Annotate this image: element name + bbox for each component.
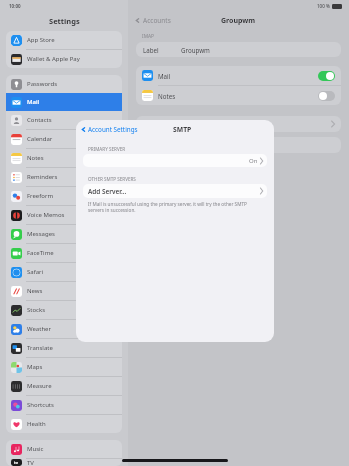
button[interactable]: Maps: [6, 358, 122, 376]
button[interactable]: Health: [6, 415, 122, 433]
button[interactable]: Contacts: [6, 111, 122, 129]
staticText: Passwords: [27, 80, 58, 88]
staticText: Accounts: [143, 16, 171, 25]
staticText: Maps: [27, 363, 43, 371]
other: Back: [135, 18, 140, 23]
other: Back to Account Settings: [81, 127, 86, 132]
staticText: FaceTime: [27, 249, 54, 257]
button[interactable]: FaceTime: [6, 244, 122, 262]
button[interactable]: On: [83, 154, 267, 167]
button[interactable]: Safari: [6, 263, 122, 281]
button[interactable]: Freeform: [6, 187, 122, 205]
staticText: Account Settings: [88, 125, 138, 134]
staticText: IMAP: [142, 33, 154, 40]
button[interactable]: tv: [6, 459, 122, 466]
staticText: Safari: [27, 268, 44, 276]
button[interactable]: Reminders: [6, 168, 122, 186]
staticText: Calendar: [27, 135, 53, 143]
staticText: Mail: [27, 98, 40, 106]
button[interactable]: Passwords: [6, 75, 122, 93]
button[interactable]: News: [6, 282, 122, 300]
staticText: Mail: [158, 72, 171, 80]
button[interactable]: Translate: [6, 339, 122, 357]
staticText: PRIMARY SERVER: [88, 146, 126, 152]
staticText: Measure: [27, 382, 52, 390]
button[interactable]: Add Server...: [83, 184, 267, 198]
staticText: On: [249, 157, 258, 165]
button[interactable]: Wallet & Apple Pay: [6, 50, 122, 68]
staticText: Messages: [27, 230, 55, 238]
button[interactable]: Mail toggle: [318, 71, 335, 81]
button[interactable]: Shortcuts: [6, 396, 122, 414]
button[interactable]: Voice Memos: [6, 206, 122, 224]
staticText: Freeform: [27, 192, 54, 200]
button[interactable]: Stocks: [6, 301, 122, 319]
button[interactable]: Calendar: [6, 130, 122, 148]
staticText: 10:00: [9, 3, 21, 9]
button[interactable]: [136, 116, 341, 132]
staticText: Groupwm: [221, 16, 256, 26]
button[interactable]: Label: [136, 42, 341, 57]
staticText: 100 %: [317, 3, 330, 9]
staticText: Stocks: [27, 306, 46, 314]
button[interactable]: Weather: [6, 320, 122, 338]
staticText: Groupwm: [181, 46, 210, 54]
button[interactable]: Notes: [136, 86, 341, 105]
staticText: Add Server...: [88, 187, 127, 196]
staticText: Notes: [27, 154, 44, 162]
button[interactable]: [136, 137, 341, 153]
staticText: News: [27, 287, 43, 295]
button[interactable]: Music: [6, 440, 122, 458]
staticText: Shortcuts: [27, 401, 54, 409]
staticText: If Mail is unsuccessful using the primar…: [88, 201, 264, 213]
button[interactable]: Measure: [6, 377, 122, 395]
staticText: Contacts: [27, 116, 52, 124]
staticText: Translate: [27, 344, 53, 352]
staticText: Notes: [158, 92, 176, 100]
staticText: TV: [27, 459, 34, 466]
button[interactable]: Back to Account Settings: [81, 125, 138, 134]
staticText: OTHER SMTP SERVERS: [88, 176, 136, 182]
button[interactable]: Mail: [6, 93, 122, 111]
staticText: Health: [27, 420, 46, 428]
staticText: Label: [143, 46, 159, 54]
button[interactable]: Notes toggle: [318, 91, 335, 101]
staticText: Weather: [27, 325, 51, 333]
button[interactable]: Mail: [136, 66, 341, 85]
button[interactable]: Messages: [6, 225, 122, 243]
button[interactable]: Back: [135, 16, 171, 25]
staticText: SMTP: [173, 125, 192, 134]
staticText: App Store: [27, 36, 55, 44]
button[interactable]: Notes: [6, 149, 122, 167]
staticText: Voice Memos: [27, 211, 65, 219]
staticText: Music: [27, 445, 44, 453]
staticText: Reminders: [27, 173, 58, 181]
staticText: Settings: [49, 16, 80, 26]
staticText: Wallet & Apple Pay: [27, 55, 80, 63]
staticText: tv: [14, 460, 19, 465]
button[interactable]: App Store: [6, 31, 122, 49]
